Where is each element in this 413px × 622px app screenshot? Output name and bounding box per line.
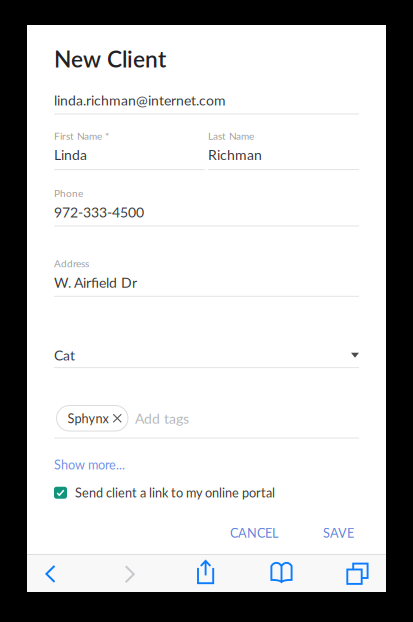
button[interactable]: CANCEL xyxy=(230,525,279,540)
button[interactable]: Send client a link to my online portal xyxy=(54,485,275,500)
staticText: linda.richman@internet.com xyxy=(54,92,226,108)
staticText: Phone xyxy=(54,187,83,199)
staticText: Linda xyxy=(54,146,87,163)
staticText: CANCEL xyxy=(230,525,279,540)
staticText: Sphynx xyxy=(67,411,108,426)
button[interactable]: Show more... xyxy=(54,457,125,472)
staticText: Send client a link to my online portal xyxy=(75,485,275,500)
button[interactable]: Share xyxy=(197,560,214,584)
staticText: SAVE xyxy=(323,525,354,540)
button[interactable]: Tabs xyxy=(346,562,369,585)
staticText: First Name * xyxy=(54,130,109,142)
button[interactable]: Bookmarks xyxy=(270,562,293,583)
staticText: Address xyxy=(54,257,89,269)
button[interactable]: Cat xyxy=(54,347,359,368)
staticText: Last Name xyxy=(208,130,254,142)
button[interactable]: Back xyxy=(45,565,56,583)
button[interactable]: Forward xyxy=(124,565,135,583)
button[interactable]: SAVE xyxy=(323,525,354,540)
staticText: Cat xyxy=(54,347,75,364)
staticText: Add tags xyxy=(135,410,189,427)
staticText: 972-333-4500 xyxy=(54,204,144,220)
button[interactable]: Sphynx xyxy=(56,405,128,431)
staticText: New Client xyxy=(54,45,166,72)
staticText: Show more... xyxy=(54,457,125,472)
staticText: W. Airfield Dr xyxy=(54,274,137,291)
staticText: Richman xyxy=(208,146,262,163)
